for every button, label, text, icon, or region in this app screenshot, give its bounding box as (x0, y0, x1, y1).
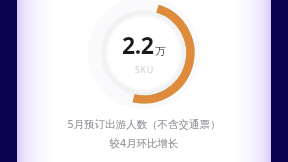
button[interactable]: SKU donut chart, 2.2万 (92, 1, 196, 105)
button[interactable]: 5月预订出游人数（不含交通票） (0, 117, 288, 150)
button[interactable] (17, 0, 271, 162)
staticText: 5月预订出游人数（不含交通票） (67, 117, 221, 131)
staticText: 万 (155, 44, 166, 58)
staticText: 较4月环比增长 (109, 136, 179, 150)
staticText: 2.2 (122, 29, 154, 60)
staticText: SKU (135, 63, 154, 75)
